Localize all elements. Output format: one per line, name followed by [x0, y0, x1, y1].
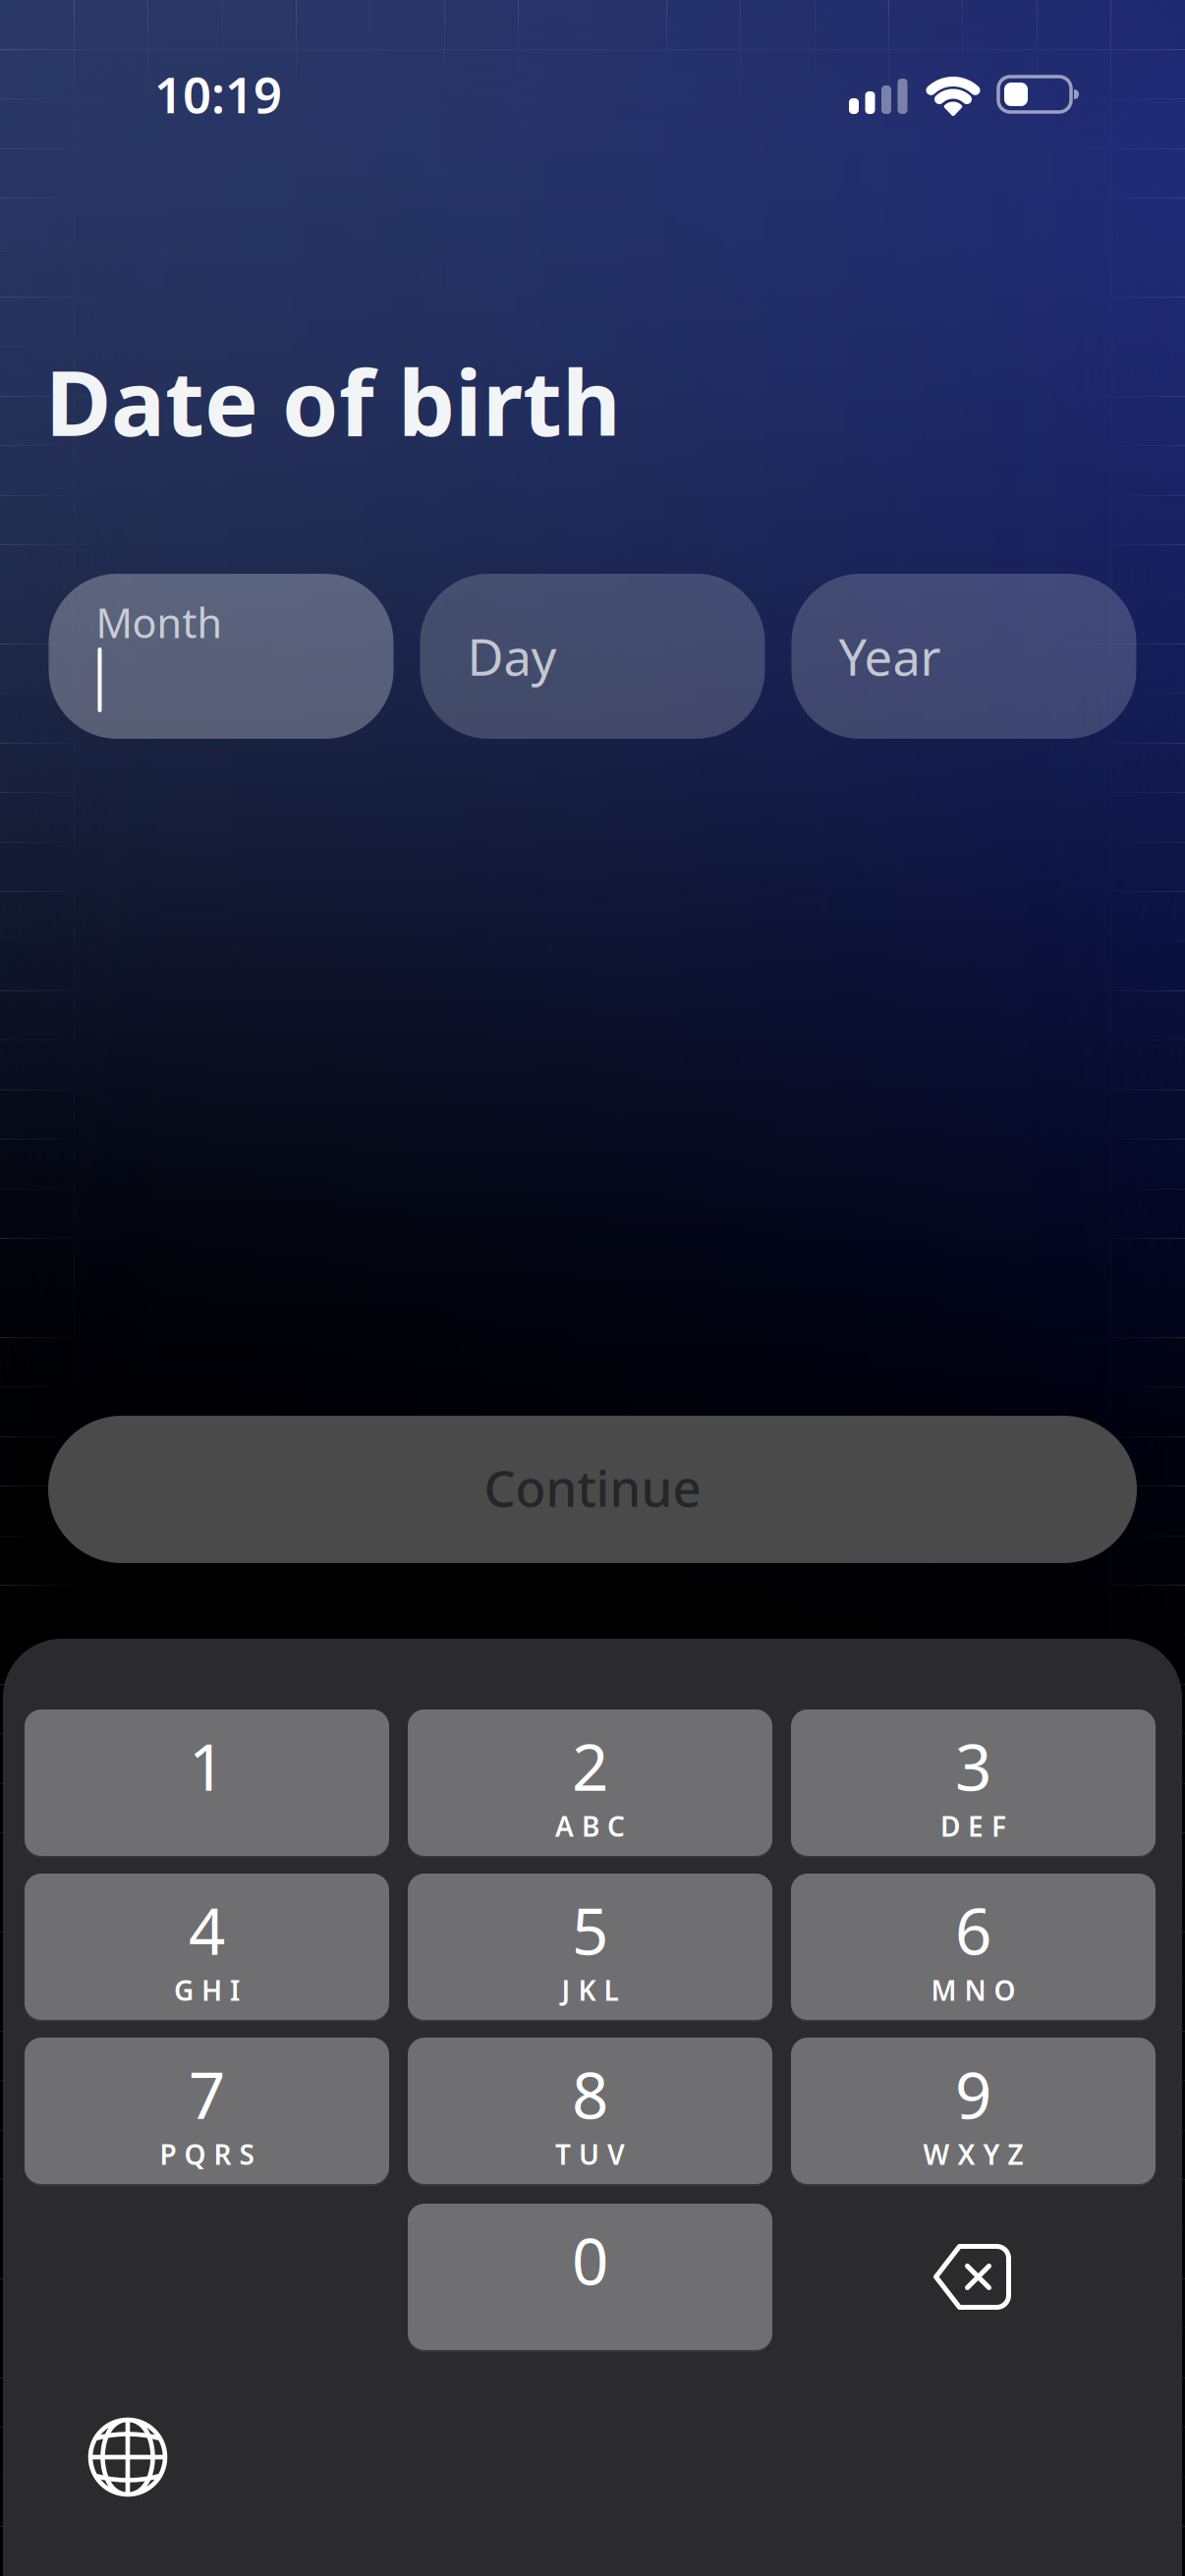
staticText: Day: [467, 623, 557, 689]
staticText: C: [607, 1808, 625, 1844]
staticText: W: [923, 2136, 950, 2172]
staticText: Z: [1008, 2136, 1023, 2172]
staticText: H: [201, 1972, 222, 2008]
button[interactable]: 9: [791, 2038, 1156, 2184]
button[interactable]: Continue: [48, 1416, 1137, 1563]
staticText: Month: [96, 595, 223, 649]
staticText: Year: [839, 623, 941, 689]
staticText: N: [964, 1972, 986, 2008]
staticText: 0: [572, 2217, 608, 2303]
staticText: E: [968, 1808, 984, 1844]
staticText: M: [931, 1972, 957, 2008]
staticText: S: [239, 2136, 254, 2172]
button[interactable]: 2: [408, 1709, 772, 1856]
button[interactable]: Month: [49, 574, 394, 739]
staticText: O: [994, 1972, 1016, 2008]
staticText: 1: [189, 1723, 225, 1809]
staticText: Continue: [484, 1454, 701, 1521]
button[interactable]: 1: [25, 1709, 389, 1856]
staticText: B: [582, 1808, 599, 1844]
staticText: 7: [189, 2051, 225, 2137]
staticText: D: [940, 1808, 960, 1844]
staticText: 8: [572, 2051, 608, 2137]
staticText: Y: [983, 2136, 1000, 2172]
staticText: V: [607, 2136, 625, 2172]
button[interactable]: Day: [420, 574, 765, 739]
staticText: T: [555, 2136, 571, 2172]
staticText: X: [958, 2136, 975, 2172]
staticText: J: [562, 1972, 570, 2008]
staticText: K: [578, 1972, 596, 2008]
button[interactable]: 8: [408, 2038, 772, 2184]
staticText: 3: [955, 1723, 991, 1809]
button[interactable]: 0: [408, 2204, 772, 2350]
staticText: Date of birth: [45, 341, 621, 461]
button[interactable]: 7: [25, 2038, 389, 2184]
staticText: G: [174, 1972, 194, 2008]
staticText: Q: [184, 2136, 206, 2172]
button[interactable]: 4: [25, 1874, 389, 2020]
staticText: 6: [955, 1887, 991, 1973]
staticText: P: [160, 2136, 176, 2172]
staticText: L: [604, 1972, 619, 2008]
button[interactable]: Delete: [923, 2238, 1021, 2316]
button[interactable]: 3: [791, 1709, 1156, 1856]
staticText: F: [991, 1808, 1006, 1844]
button[interactable]: Year: [791, 574, 1136, 739]
button[interactable]: Next keyboard: [79, 2408, 177, 2506]
staticText: 9: [955, 2051, 991, 2137]
staticText: A: [555, 1808, 574, 1844]
button[interactable]: 5: [408, 1874, 772, 2020]
staticText: R: [214, 2136, 231, 2172]
staticText: 5: [572, 1887, 608, 1973]
button[interactable]: 6: [791, 1874, 1156, 2020]
staticText: 2: [572, 1723, 608, 1809]
staticText: I: [230, 1972, 240, 2008]
staticText: U: [579, 2136, 599, 2172]
staticText: 10:19: [154, 61, 282, 127]
staticText: 4: [189, 1887, 225, 1973]
